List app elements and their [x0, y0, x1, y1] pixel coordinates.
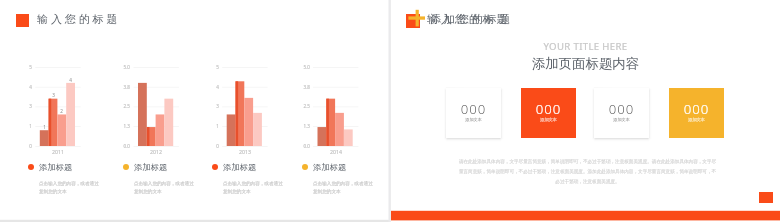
staticText: 添加标题	[313, 162, 347, 172]
staticText: 000	[669, 100, 724, 118]
staticText: 添加标题	[134, 162, 168, 172]
staticText: 4	[66, 77, 75, 83]
staticText: 2	[57, 108, 66, 114]
staticText: 0	[24, 143, 32, 149]
staticText: 3	[49, 92, 58, 98]
button[interactable]: 添加标题	[302, 160, 368, 196]
staticText: 1	[211, 123, 219, 129]
staticText: 添加标题	[39, 162, 73, 172]
staticText: 3	[24, 103, 32, 109]
staticText: 5.0	[302, 64, 310, 70]
staticText: 2.5	[302, 103, 310, 109]
staticText: 输入您的标题	[427, 12, 511, 26]
staticText: 3.8	[302, 84, 310, 90]
staticText: 0.0	[122, 143, 130, 149]
staticText: 1	[24, 123, 32, 129]
staticText: 000	[521, 100, 576, 118]
staticText: 添加页面标题内容	[391, 55, 780, 72]
button[interactable]: 000	[446, 88, 501, 138]
staticText: 添加文本	[446, 117, 501, 122]
button[interactable]: 000	[669, 88, 724, 138]
staticText: 添加您的标题	[430, 12, 514, 26]
staticText: 0	[211, 143, 219, 149]
staticText: 000	[446, 100, 501, 118]
button[interactable]: 添加标题	[123, 160, 189, 196]
staticText: 2.5	[122, 103, 130, 109]
button[interactable]: 添加标题	[212, 160, 278, 196]
staticText: 请在此处添加具体内容，文字尽量言简意赅，简单说明即可，不必过于繁琐，注意板面美观…	[457, 159, 718, 185]
staticText: 添加文本	[669, 117, 724, 122]
staticText: 1.3	[122, 123, 130, 129]
staticText: 3.8	[122, 84, 130, 90]
staticText: 2013	[232, 148, 258, 155]
staticText: 点击输入您的内容，或者通过复制您的文本	[313, 181, 373, 194]
staticText: 点击输入您的内容，或者通过复制您的文本	[39, 181, 99, 194]
staticText: 0.0	[302, 143, 310, 149]
button[interactable]: 添加标题	[28, 160, 94, 196]
staticText: 5	[211, 64, 219, 70]
staticText: 4	[24, 84, 32, 90]
staticText: 2011	[45, 148, 71, 155]
staticText: 4	[211, 84, 219, 90]
button[interactable]: 000	[521, 88, 576, 138]
button[interactable]: Add	[406, 14, 420, 28]
staticText: YOUR TITLE HERE	[391, 40, 780, 53]
staticText: 添加标题	[223, 162, 257, 172]
staticText: 000	[594, 100, 649, 118]
staticText: 添加文本	[521, 117, 576, 122]
staticText: 3	[211, 103, 219, 109]
staticText: 2014	[323, 148, 349, 155]
staticText: 输入您的标题	[37, 12, 121, 26]
staticText: 点击输入您的内容，或者通过复制您的文本	[223, 181, 283, 194]
staticText: 5.0	[122, 64, 130, 70]
staticText: 2012	[143, 148, 169, 155]
staticText: 1	[40, 124, 49, 130]
staticText: 1.3	[302, 123, 310, 129]
button[interactable]: 000	[594, 88, 649, 138]
staticText: 5	[24, 64, 32, 70]
staticText: 添加文本	[594, 117, 649, 122]
staticText: 点击输入您的内容，或者通过复制您的文本	[134, 181, 194, 194]
